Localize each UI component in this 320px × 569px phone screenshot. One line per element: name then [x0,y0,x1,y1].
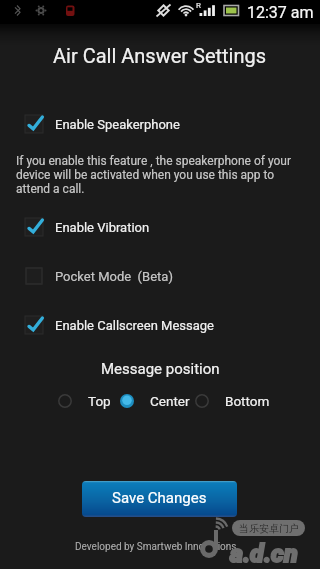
button[interactable]: Enable Vibration [0,212,320,242]
button[interactable]: Save Changes [82,481,237,517]
staticText: Save Changes [112,489,207,507]
button[interactable]: Enable Speakerphone [0,109,320,139]
button[interactable]: Top [58,392,111,410]
staticText: Air Call Answer Settings [53,44,267,67]
staticText: R [196,1,201,10]
staticText: Bottom [225,393,270,409]
staticText: Pocket Mode (Beta) [55,269,173,284]
staticText: Center [150,393,190,409]
button[interactable]: Center [120,392,190,410]
staticText: Enable Callscreen Message [55,318,214,333]
staticText: Top [88,393,111,409]
staticText: 12:37 am [247,3,314,22]
staticText: 当乐安卓门户 [239,522,299,535]
button[interactable]: Bottom [195,392,270,410]
staticText: Developed by Smartweb Innovations [75,541,237,553]
staticText: If you enable this feature , the speaker… [16,154,292,196]
staticText: Message position [101,360,220,378]
button[interactable]: Enable Callscreen Message [0,310,320,340]
staticText: Enable Speakerphone [55,117,180,132]
staticText: Enable Vibration [55,220,150,235]
button[interactable]: Pocket Mode (Beta) [0,261,320,291]
